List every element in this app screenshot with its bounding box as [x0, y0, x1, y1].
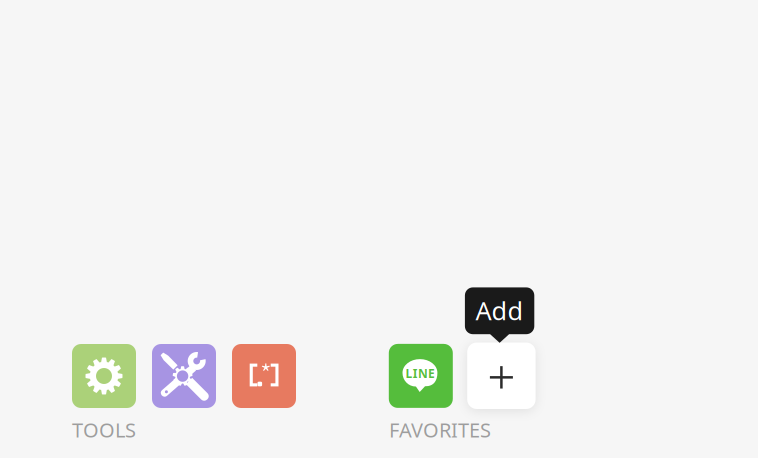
- button[interactable]: LINE: [389, 344, 453, 408]
- button[interactable]: Add: [467, 342, 536, 409]
- staticText: Add: [476, 294, 524, 327]
- staticText: FAVORITES: [389, 416, 491, 443]
- button[interactable]: Settings: [72, 344, 136, 408]
- button[interactable]: Regex: [232, 344, 296, 408]
- staticText: TOOLS: [72, 416, 136, 443]
- button[interactable]: Tools: [152, 344, 216, 408]
- staticText: LINE: [406, 365, 435, 381]
